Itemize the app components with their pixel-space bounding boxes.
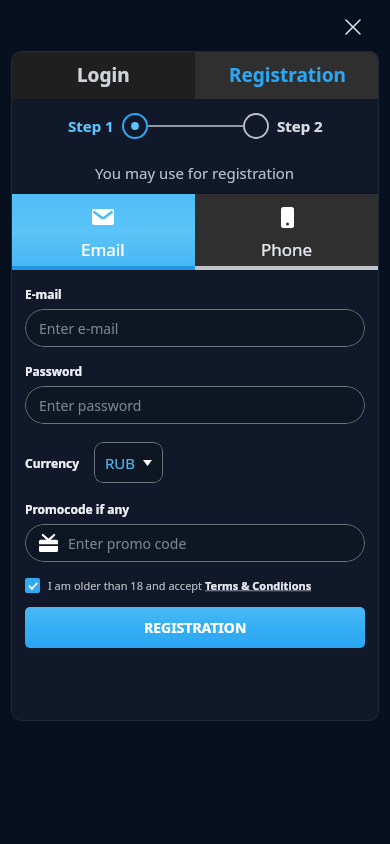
staticText: Step 1 [68, 116, 114, 136]
staticText: Enter promo code [68, 534, 187, 553]
button[interactable]: Enter e-mail [25, 309, 365, 347]
button[interactable]: Login [11, 51, 195, 99]
staticText: Enter e-mail [39, 319, 119, 338]
staticText: Promocode if any [25, 501, 130, 517]
staticText: Login [77, 62, 130, 88]
staticText: Email [81, 238, 125, 261]
button[interactable]: I am older than 18 and accept [25, 578, 312, 593]
button[interactable]: Phone [195, 194, 379, 270]
staticText: E-mail [25, 286, 62, 302]
staticText: Password [25, 363, 83, 379]
button[interactable]: Enter promo code [25, 524, 365, 562]
button[interactable]: Registration [195, 51, 379, 99]
staticText: Phone [261, 238, 313, 261]
staticText: Enter password [39, 396, 142, 415]
button[interactable]: Email [11, 194, 195, 270]
button[interactable]: Enter password [25, 386, 365, 424]
staticText: RUB [105, 453, 136, 473]
button[interactable]: Close [338, 12, 368, 42]
staticText: Registration [229, 62, 346, 88]
staticText: I am older than 18 and accept [48, 578, 205, 593]
staticText: Terms & Conditions [205, 578, 312, 593]
staticText: Step 2 [277, 116, 323, 136]
button[interactable]: RUB [94, 442, 163, 483]
button[interactable]: REGISTRATION [25, 607, 365, 648]
staticText: You may use for registration [95, 163, 295, 183]
staticText: Currency [25, 455, 80, 471]
staticText: REGISTRATION [144, 618, 247, 637]
